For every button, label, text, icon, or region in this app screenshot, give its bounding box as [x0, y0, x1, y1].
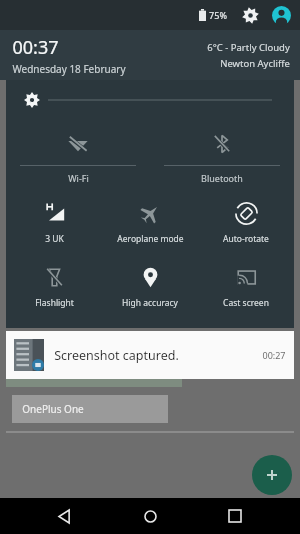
staticText: Bluetooth	[201, 172, 243, 184]
button[interactable]: Bluetooth	[150, 120, 294, 192]
button[interactable]: Back	[45, 498, 85, 534]
staticText: Newton Aycliffe	[220, 57, 290, 70]
staticText: Cast screen	[223, 297, 269, 309]
staticText: Auto-rotate	[223, 233, 269, 245]
button[interactable]: Auto-rotate	[198, 192, 294, 256]
staticText: 3 UK	[45, 233, 64, 245]
button[interactable]: User profile	[270, 4, 292, 26]
button[interactable]: Brightness	[6, 80, 294, 120]
button[interactable]: Aeroplane mode	[102, 192, 198, 256]
button[interactable]: Wi-Fi	[6, 120, 150, 192]
button[interactable]: OnePlus One	[12, 395, 168, 423]
button[interactable]: Cast screen	[198, 256, 294, 320]
staticText: Wednesday 18 February	[12, 62, 126, 76]
button[interactable]: 3 UK	[6, 192, 102, 256]
staticText: Flashlight	[35, 297, 74, 309]
button[interactable]: High accuracy	[102, 256, 198, 320]
button[interactable]: Settings	[239, 4, 261, 26]
staticText: OnePlus One	[22, 402, 84, 416]
button[interactable]: Add	[252, 455, 292, 495]
button[interactable]: Recents	[215, 498, 255, 534]
button[interactable]: Flashlight	[6, 256, 102, 320]
staticText: 6°C - Partly Cloudy	[207, 41, 290, 54]
button[interactable]: Screenshot captured.	[6, 331, 294, 379]
staticText: High accuracy	[122, 297, 178, 309]
staticText: Screenshot captured.	[54, 347, 179, 364]
button[interactable]: Home	[130, 498, 170, 534]
staticText: 75%	[209, 9, 227, 21]
staticText: Wi-Fi	[68, 172, 89, 184]
staticText: 00:37	[12, 35, 59, 60]
staticText: Aeroplane mode	[117, 233, 184, 245]
staticText: 00:27	[262, 349, 286, 361]
